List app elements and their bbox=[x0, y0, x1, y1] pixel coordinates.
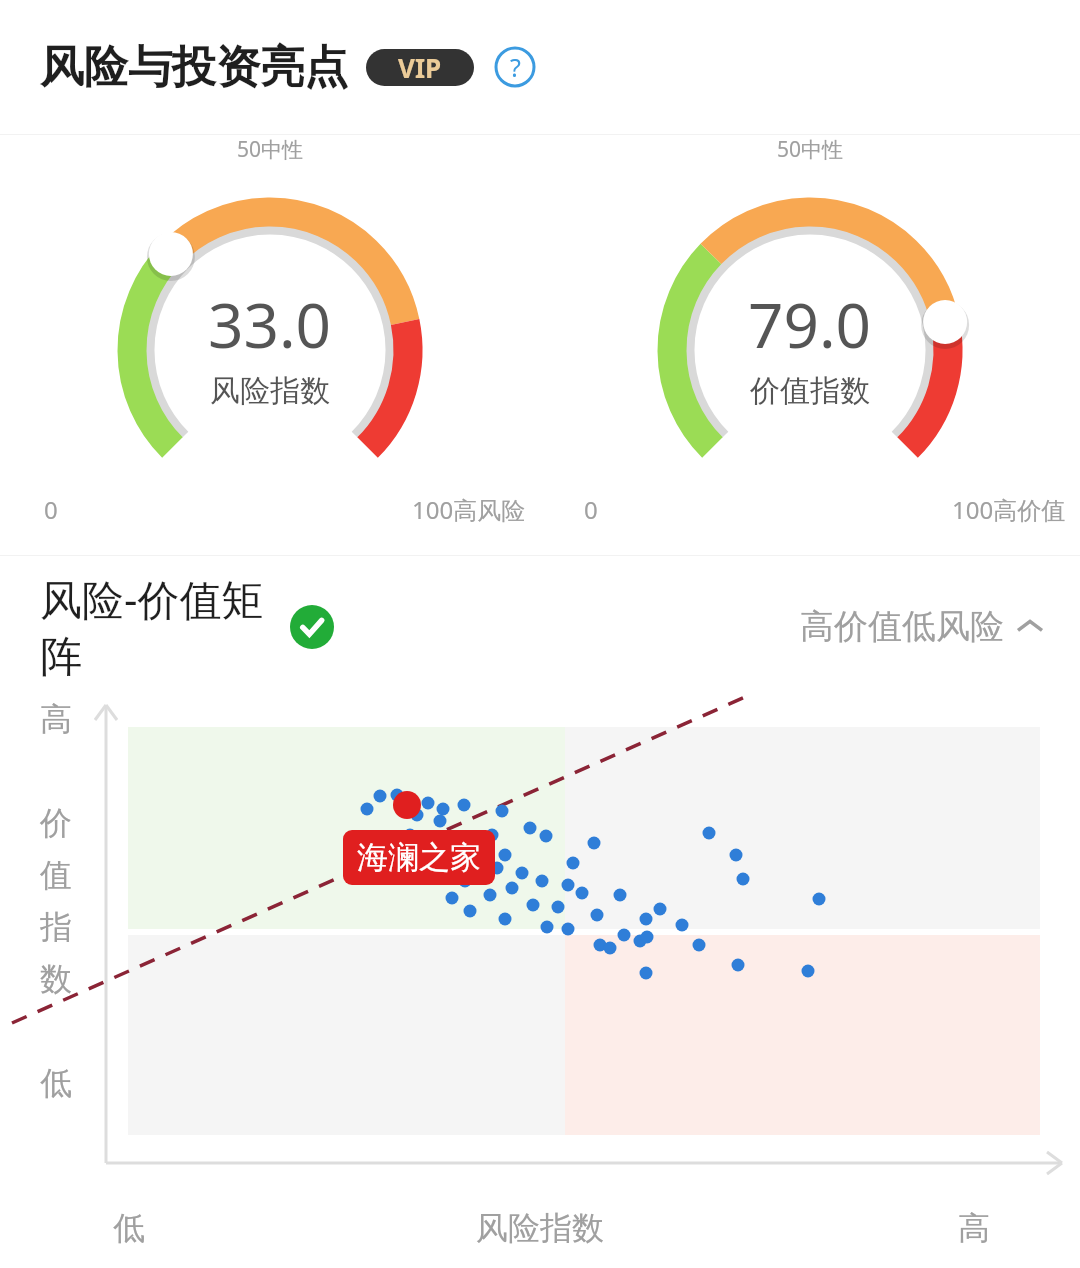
staticText: 风险与投资亮点 bbox=[40, 40, 348, 95]
staticText: 高 bbox=[40, 699, 72, 739]
staticText: 风险-价值矩阵 bbox=[40, 570, 290, 683]
staticText: ? bbox=[510, 50, 521, 84]
button[interactable]: 海澜之家 bbox=[343, 830, 495, 885]
staticText: 风险指数 bbox=[476, 1208, 604, 1248]
button[interactable]: 已选中 bbox=[290, 605, 334, 649]
staticText: 低 bbox=[40, 1063, 72, 1103]
staticText: 100高风险 bbox=[412, 493, 526, 526]
button[interactable]: 帮助 bbox=[494, 46, 536, 88]
staticText: 价值指数 bbox=[750, 372, 870, 410]
button[interactable]: VIP bbox=[366, 49, 474, 86]
staticText: 高 bbox=[958, 1208, 990, 1248]
staticText: 100高价值 bbox=[952, 493, 1066, 526]
button[interactable]: 高价值低风险 bbox=[800, 605, 1044, 648]
staticText: 风险指数 bbox=[210, 372, 330, 410]
staticText: 海澜之家 bbox=[357, 838, 481, 877]
staticText: 0 bbox=[584, 493, 598, 526]
staticText: 79.0 bbox=[748, 282, 872, 366]
staticText: 0 bbox=[44, 493, 58, 526]
staticText: 50中性 bbox=[237, 135, 304, 164]
staticText: 高价值低风险 bbox=[800, 605, 1004, 648]
staticText: 33.0 bbox=[208, 282, 332, 366]
staticText: 50中性 bbox=[777, 135, 844, 164]
staticText: VIP bbox=[398, 50, 442, 85]
staticText: 价 值 指 数 bbox=[40, 803, 72, 999]
staticText: 低 bbox=[113, 1208, 145, 1248]
